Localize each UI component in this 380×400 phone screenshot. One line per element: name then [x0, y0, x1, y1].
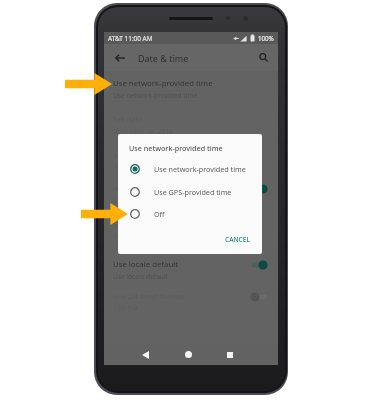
staticText: Use network-provided time	[154, 164, 246, 174]
button[interactable]: CANCEL	[218, 230, 258, 249]
staticText: 11:00 AM	[113, 163, 142, 172]
staticText: Off	[154, 209, 165, 219]
button[interactable]: Set date	[104, 109, 278, 142]
staticText: Use locale default	[113, 259, 179, 270]
staticText: Date & time	[138, 52, 189, 64]
button[interactable]: Automatic time zone	[104, 178, 278, 211]
button[interactable]: Use network-provided time	[104, 73, 278, 106]
button[interactable]: Select time zone	[104, 214, 278, 247]
button[interactable]: Set time	[104, 145, 278, 178]
staticText: Select time zone	[113, 219, 173, 230]
staticText: Set time	[113, 150, 144, 161]
staticText: Automatic time zone	[113, 183, 189, 194]
button[interactable]: Use network-provided time	[118, 158, 262, 180]
button[interactable]: Back	[111, 49, 128, 66]
staticText: AT&T 11:00 AM	[108, 34, 153, 43]
button[interactable]: Back	[136, 344, 154, 365]
button[interactable]: Use GPS-provided time	[118, 181, 262, 203]
button[interactable]: Recent apps	[221, 344, 239, 365]
staticText: December 18, 2018	[113, 127, 173, 136]
staticText: Use network-provided time	[113, 91, 198, 100]
staticText: Use network-provided time	[113, 78, 213, 89]
staticText: GMT-08:00 Pacific Time	[113, 232, 185, 241]
staticText: Use GPS-provided time	[154, 187, 232, 197]
staticText: 100%	[258, 34, 274, 42]
button[interactable]: Off	[118, 203, 262, 225]
staticText: Use network-provided zone	[113, 196, 199, 205]
staticText: Use network-provided time	[129, 143, 223, 153]
staticText: CANCEL	[225, 235, 251, 244]
staticText: Use locale default	[113, 272, 168, 281]
button[interactable]: Home	[179, 344, 197, 365]
button[interactable]: Search	[255, 49, 272, 66]
button[interactable]: Use locale default	[104, 254, 278, 287]
